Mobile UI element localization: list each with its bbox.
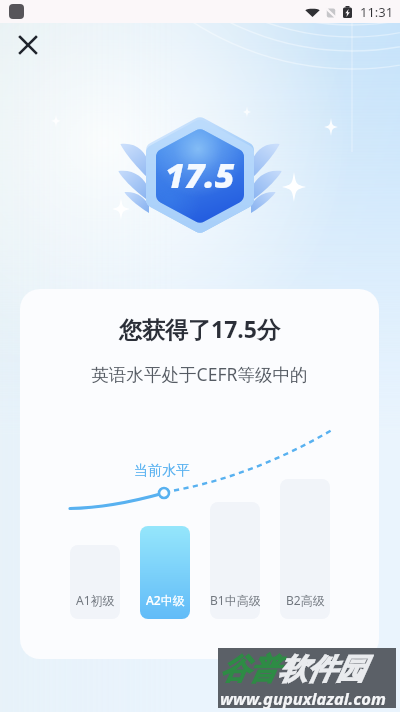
staticText: B1中高级 bbox=[210, 592, 260, 608]
staticText: A2中级 bbox=[146, 592, 185, 608]
staticText: B2高级 bbox=[286, 592, 325, 608]
staticText: 当前水平 bbox=[134, 462, 190, 480]
staticText: 软件园 bbox=[278, 651, 365, 688]
staticText: www.gupuxlazal.com bbox=[220, 687, 386, 709]
button[interactable]: B1中高级 bbox=[210, 502, 260, 619]
button[interactable]: A2中级 bbox=[140, 526, 190, 619]
staticText: 谷普 bbox=[220, 651, 278, 688]
staticText: 11:31 bbox=[360, 3, 394, 21]
button[interactable]: Close bbox=[6, 23, 50, 67]
button[interactable]: A1初级 bbox=[70, 545, 120, 619]
staticText: A1初级 bbox=[76, 592, 115, 608]
staticText: 17.5 bbox=[165, 152, 235, 198]
staticText: 英语水平处于CEFR等级中的 bbox=[20, 362, 379, 386]
button[interactable]: B2高级 bbox=[280, 479, 330, 619]
staticText: 您获得了17.5分 bbox=[20, 313, 379, 344]
